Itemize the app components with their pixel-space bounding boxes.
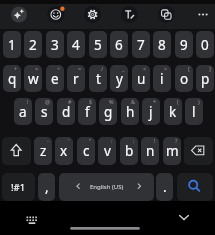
staticText: [: [188, 65, 190, 72]
button[interactable]: [22, 210, 44, 230]
staticText: ": [89, 137, 92, 144]
button[interactable]: [189, 1, 215, 28]
button[interactable]: v: [98, 137, 116, 165]
staticText: !: [27, 98, 29, 105]
button[interactable]: 9: [175, 31, 193, 58]
button[interactable]: 1: [3, 31, 21, 58]
staticText: 2: [29, 36, 37, 54]
staticText: 6: [115, 36, 123, 54]
button[interactable]: .: [156, 173, 173, 201]
button[interactable]: ,: [38, 173, 55, 201]
staticText: h: [126, 103, 135, 121]
staticText: English (US): [90, 183, 124, 191]
button[interactable]: x: [55, 137, 73, 165]
staticText: <: [143, 65, 147, 72]
button[interactable]: 4: [67, 31, 85, 58]
button[interactable]: 7: [132, 31, 150, 58]
staticText: c: [83, 142, 90, 160]
staticText: ÷: [57, 65, 61, 72]
staticText: u: [137, 70, 146, 88]
staticText: ;: [133, 137, 135, 144]
staticText: (: [177, 98, 179, 105]
button[interactable]: [173, 208, 195, 228]
staticText: p: [201, 70, 210, 88]
staticText: _: [122, 65, 125, 72]
button[interactable]: a: [14, 98, 32, 125]
staticText: 1: [8, 36, 16, 54]
button[interactable]: w: [24, 65, 42, 92]
button[interactable]: k: [164, 98, 182, 125]
button[interactable]: u: [132, 65, 150, 92]
button[interactable]: y: [110, 65, 128, 92]
button[interactable]: 0: [196, 31, 214, 58]
button[interactable]: 3: [46, 31, 64, 58]
button[interactable]: d: [57, 98, 75, 125]
staticText: 5: [94, 36, 102, 54]
button[interactable]: n: [141, 137, 159, 165]
staticText: !: [154, 137, 156, 144]
button[interactable]: l: [185, 98, 203, 125]
button[interactable]: 2: [24, 31, 42, 58]
staticText: m: [166, 142, 179, 160]
staticText: v: [104, 142, 111, 160]
button[interactable]: [2, 137, 31, 165]
button[interactable]: !#1: [2, 173, 35, 201]
button[interactable]: 6: [110, 31, 128, 58]
button[interactable]: p: [196, 65, 214, 92]
staticText: o: [180, 70, 189, 88]
staticText: 9: [180, 36, 188, 54]
button[interactable]: [5, 1, 33, 28]
staticText: -: [47, 137, 49, 144]
button[interactable]: c: [77, 137, 95, 165]
button[interactable]: 5: [89, 31, 107, 58]
button[interactable]: [59, 173, 154, 201]
staticText: z: [40, 142, 47, 160]
staticText: n: [146, 142, 155, 160]
staticText: 4: [72, 36, 80, 54]
staticText: q: [8, 70, 17, 88]
button[interactable]: q: [3, 65, 21, 92]
button[interactable]: r: [67, 65, 85, 92]
button[interactable]: s: [35, 98, 53, 125]
button[interactable]: m: [163, 137, 181, 165]
staticText: e: [51, 70, 59, 88]
staticText: f: [85, 103, 90, 121]
staticText: j: [149, 103, 153, 121]
button[interactable]: 8: [153, 31, 171, 58]
button[interactable]: [79, 1, 107, 28]
staticText: +: [14, 65, 18, 72]
staticText: ×: [35, 65, 39, 72]
button[interactable]: z: [34, 137, 52, 165]
staticText: 0: [201, 36, 209, 54]
button[interactable]: o: [175, 65, 193, 92]
staticText: .: [163, 178, 167, 196]
button[interactable]: [42, 1, 70, 28]
button[interactable]: e: [46, 65, 64, 92]
button[interactable]: [152, 1, 180, 28]
staticText: w: [28, 70, 39, 88]
staticText: d: [62, 103, 71, 121]
staticText: ]: [209, 65, 211, 72]
button[interactable]: [177, 173, 213, 201]
button[interactable]: f: [78, 98, 96, 125]
button[interactable]: g: [99, 98, 117, 125]
button[interactable]: h: [121, 98, 139, 125]
staticText: @: [45, 98, 50, 105]
staticText: 7: [137, 36, 145, 54]
button[interactable]: [115, 1, 143, 28]
button[interactable]: t: [89, 65, 107, 92]
staticText: $: [89, 98, 93, 105]
staticText: t: [96, 70, 101, 88]
staticText: #: [68, 98, 72, 105]
staticText: !#1: [11, 181, 26, 194]
staticText: i: [160, 70, 164, 88]
button[interactable]: [184, 137, 213, 165]
button[interactable]: i: [153, 65, 171, 92]
staticText: ?: [175, 137, 178, 144]
button[interactable]: b: [120, 137, 138, 165]
button[interactable]: j: [142, 98, 160, 125]
staticText: g: [104, 103, 113, 121]
staticText: >: [164, 65, 168, 72]
staticText: &: [131, 98, 136, 105]
staticText: =: [78, 65, 82, 72]
